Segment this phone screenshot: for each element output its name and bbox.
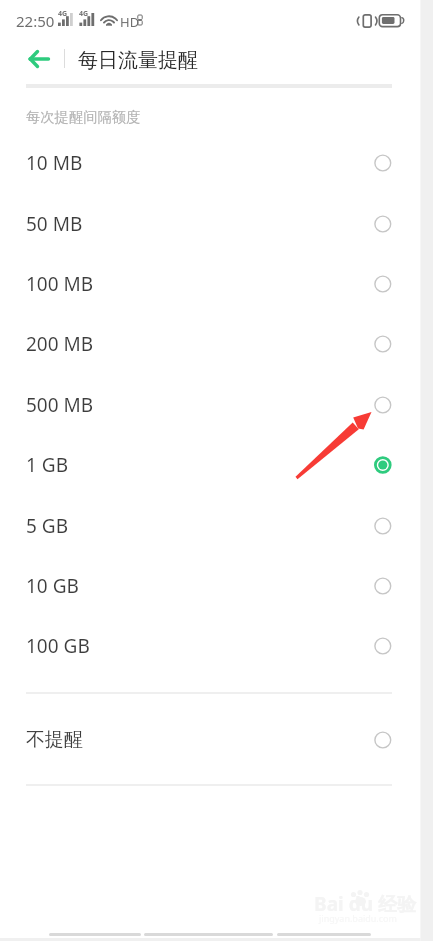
staticText: 200 MB	[26, 331, 94, 357]
staticText: 100 GB	[26, 633, 90, 659]
staticText: 500 MB	[26, 392, 94, 418]
button[interactable]: 50 MB	[0, 194, 433, 254]
staticText: 10 MB	[26, 150, 83, 176]
button[interactable]: 100 MB	[0, 254, 433, 314]
staticText: 4G	[58, 9, 68, 19]
button[interactable]: 10 MB	[0, 133, 433, 193]
staticText: 4G	[79, 9, 89, 19]
button[interactable]: Back	[22, 43, 54, 75]
staticText: 10 GB	[26, 573, 79, 599]
button[interactable]: 100 GB	[0, 616, 433, 676]
staticText: HD	[120, 13, 140, 31]
staticText: 5 GB	[26, 513, 68, 539]
button[interactable]: 500 MB	[0, 375, 433, 435]
staticText: Bai du 经验	[314, 891, 416, 917]
staticText: 1 GB	[26, 452, 68, 478]
staticText: 每次提醒间隔额度	[26, 108, 141, 126]
staticText: 22:50	[16, 11, 55, 31]
staticText: 100 MB	[26, 271, 94, 297]
button[interactable]: 200 MB	[0, 314, 433, 374]
button[interactable]: 10 GB	[0, 556, 433, 616]
button[interactable]: 1 GB	[0, 435, 433, 495]
button[interactable]: 5 GB	[0, 496, 433, 556]
button[interactable]: 不提醒	[0, 710, 433, 770]
staticText: 每日流量提醒	[78, 48, 198, 73]
staticText: 不提醒	[26, 728, 83, 752]
staticText: 50 MB	[26, 211, 83, 237]
